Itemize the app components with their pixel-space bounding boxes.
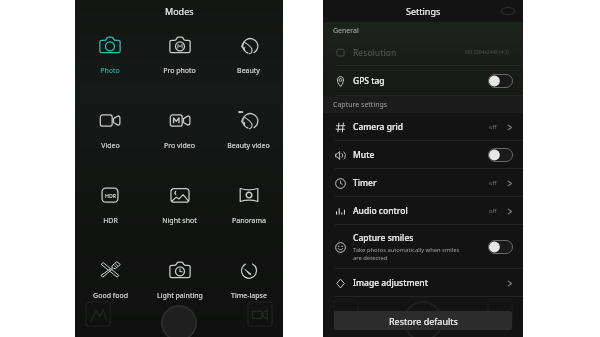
button[interactable]: Image adjustment — [323, 269, 523, 297]
staticText: Pro video — [164, 141, 195, 151]
button[interactable]: Beauty video — [214, 109, 283, 155]
staticText: HDR — [105, 192, 116, 199]
button[interactable]: Gallery — [86, 302, 110, 326]
staticText: General — [333, 26, 359, 36]
staticText: Take photos automatically when smiles ar… — [353, 246, 460, 262]
staticText: off — [489, 179, 497, 187]
button[interactable]: Resolution — [323, 39, 523, 66]
staticText: Capture settings — [333, 100, 388, 110]
button[interactable]: Panorama — [214, 184, 283, 230]
button[interactable]: GPS tag — [323, 66, 523, 96]
button[interactable]: Photo — [75, 34, 145, 80]
staticText: Video — [101, 141, 120, 151]
button[interactable]: Night shot — [145, 184, 214, 230]
button[interactable]: Restore defaults — [334, 311, 512, 330]
staticText: Pro photo — [163, 66, 196, 76]
staticText: Good food — [93, 291, 128, 301]
button[interactable]: Beauty — [214, 34, 283, 80]
staticText: Photo — [100, 66, 120, 76]
staticText: GPS tag — [353, 75, 385, 87]
staticText: Panorama — [232, 216, 266, 226]
staticText: Beauty — [237, 66, 260, 76]
button[interactable]: Pro video — [145, 109, 214, 155]
staticText: Image adjustment — [353, 277, 428, 289]
staticText: Mute — [353, 149, 375, 161]
staticText: off — [489, 207, 497, 215]
staticText: Camera grid — [353, 121, 404, 133]
button[interactable]: HDR — [75, 184, 145, 230]
staticText: 8M 3264x2448 (4:3) — [465, 49, 509, 56]
button[interactable]: Capture smiles — [323, 225, 523, 269]
button[interactable]: Switch camera — [501, 4, 515, 18]
staticText: Audio control — [353, 205, 408, 217]
staticText: Resolution — [353, 47, 397, 59]
staticText: Beauty video — [227, 141, 270, 151]
staticText: Capture smiles — [353, 232, 414, 244]
button[interactable]: Time-lapse — [214, 259, 283, 305]
button[interactable]: Pro photo — [145, 34, 214, 80]
button[interactable]: Timer — [323, 169, 523, 197]
staticText: Night shot — [162, 216, 197, 226]
staticText: Settings — [406, 5, 441, 17]
staticText: Light painting — [157, 291, 203, 301]
button[interactable]: Good food — [75, 259, 145, 305]
staticText: Modes — [165, 5, 194, 17]
button[interactable]: Light painting — [145, 259, 214, 305]
button[interactable]: Shutter — [161, 305, 197, 337]
button[interactable]: Video — [75, 109, 145, 155]
staticText: Timer — [353, 177, 377, 189]
button[interactable]: Mute — [323, 141, 523, 169]
staticText: off — [489, 123, 497, 131]
staticText: Time-lapse — [231, 291, 267, 301]
button[interactable]: Record video — [248, 302, 272, 326]
staticText: Restore defaults — [389, 315, 458, 327]
staticText: HDR — [103, 216, 118, 226]
button[interactable]: Audio control — [323, 197, 523, 225]
button[interactable]: Camera grid — [323, 113, 523, 141]
